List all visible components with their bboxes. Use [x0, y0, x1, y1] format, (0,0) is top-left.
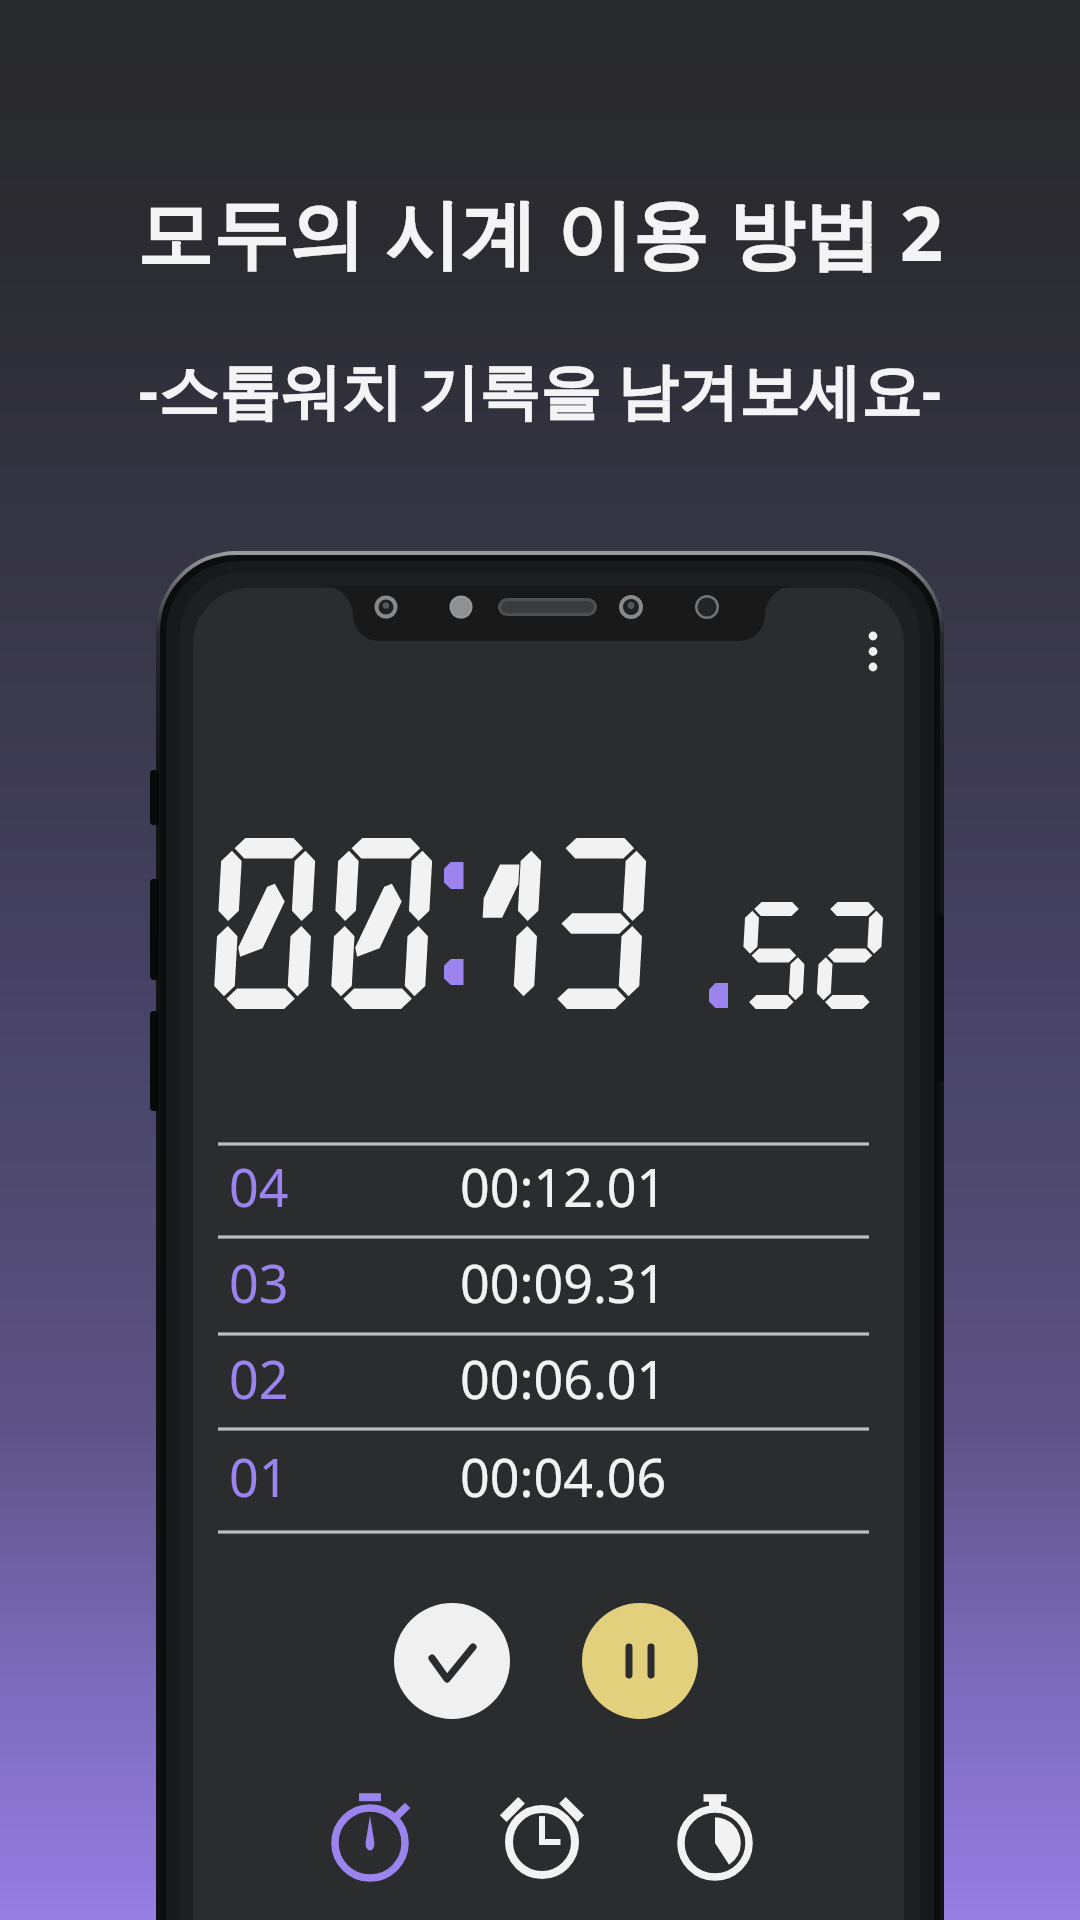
staticText: 00:09.31 — [460, 1247, 667, 1318]
staticText: 01 — [229, 1441, 289, 1512]
button[interactable]: Timer — [629, 1765, 801, 1920]
staticText: 00:04.06 — [460, 1441, 667, 1512]
staticText: 02 — [229, 1343, 289, 1414]
staticText: 03 — [229, 1247, 289, 1318]
button[interactable]: 04 — [218, 1139, 878, 1234]
button[interactable]: Pause — [582, 1603, 698, 1719]
staticText: 04 — [229, 1151, 289, 1222]
staticText: -스톱워치 기록을 남겨보세요- — [0, 348, 1080, 431]
staticText: 모두의 시계 이용 방법 2 — [0, 180, 1080, 284]
button[interactable]: 03 — [218, 1235, 878, 1330]
button[interactable]: 01 — [218, 1429, 878, 1524]
button[interactable]: 02 — [218, 1331, 878, 1426]
staticText: 00:12.01 — [460, 1151, 667, 1222]
staticText: 00:06.01 — [460, 1343, 667, 1414]
button[interactable]: Stopwatch — [284, 1765, 456, 1920]
button[interactable]: Alarm — [456, 1764, 628, 1920]
button[interactable]: Lap — [394, 1603, 510, 1719]
